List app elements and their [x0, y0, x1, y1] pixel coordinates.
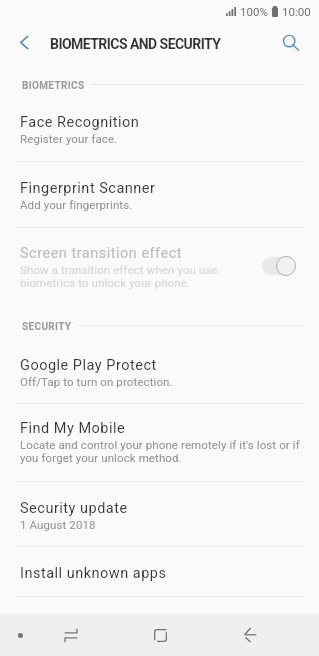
staticText: BIOMETRICS [22, 80, 85, 92]
staticText: Add your fingerprints. [20, 198, 133, 211]
staticText: 1 August 2018 [20, 518, 96, 531]
button[interactable]: Back [229, 614, 271, 656]
button[interactable]: Recent apps [50, 614, 92, 656]
button[interactable]: Screen transition effect [0, 227, 319, 305]
button[interactable]: Home [139, 614, 181, 656]
button[interactable]: Google Play Protect [0, 338, 319, 403]
staticText: Show a transition effect when you use [20, 263, 218, 276]
button[interactable]: Keyboard [0, 614, 41, 656]
staticText: BIOMETRICS AND SECURITY [50, 36, 221, 52]
staticText: Fingerprint Scanner [20, 180, 156, 197]
button[interactable]: Search [269, 22, 310, 63]
staticText: Face Recognition [20, 114, 140, 131]
staticText: Google Play Protect [20, 357, 157, 374]
staticText: Security update [20, 500, 128, 517]
button[interactable]: Find My Mobile [0, 403, 319, 481]
staticText: 100% [240, 5, 268, 18]
staticText: Locate and control your phone remotely i… [20, 438, 300, 451]
button[interactable]: Face Recognition [0, 96, 319, 161]
staticText: you forget your unlock method. [20, 451, 182, 464]
staticText: 10:00 [282, 5, 311, 18]
staticText: Screen transition effect [20, 245, 183, 262]
button[interactable]: Navigate up [4, 22, 45, 63]
button[interactable]: Security update [0, 481, 319, 546]
staticText: Register your face. [20, 132, 118, 145]
staticText: Find My Mobile [20, 420, 126, 437]
staticText: biometrics to unlock your phone. [20, 276, 191, 289]
staticText: SECURITY [22, 321, 72, 333]
button[interactable]: Fingerprint Scanner [0, 161, 319, 227]
button[interactable]: Install unknown apps [0, 546, 319, 596]
staticText: Install unknown apps [20, 565, 167, 582]
staticText: Off/Tap to turn on protection. [20, 375, 173, 388]
